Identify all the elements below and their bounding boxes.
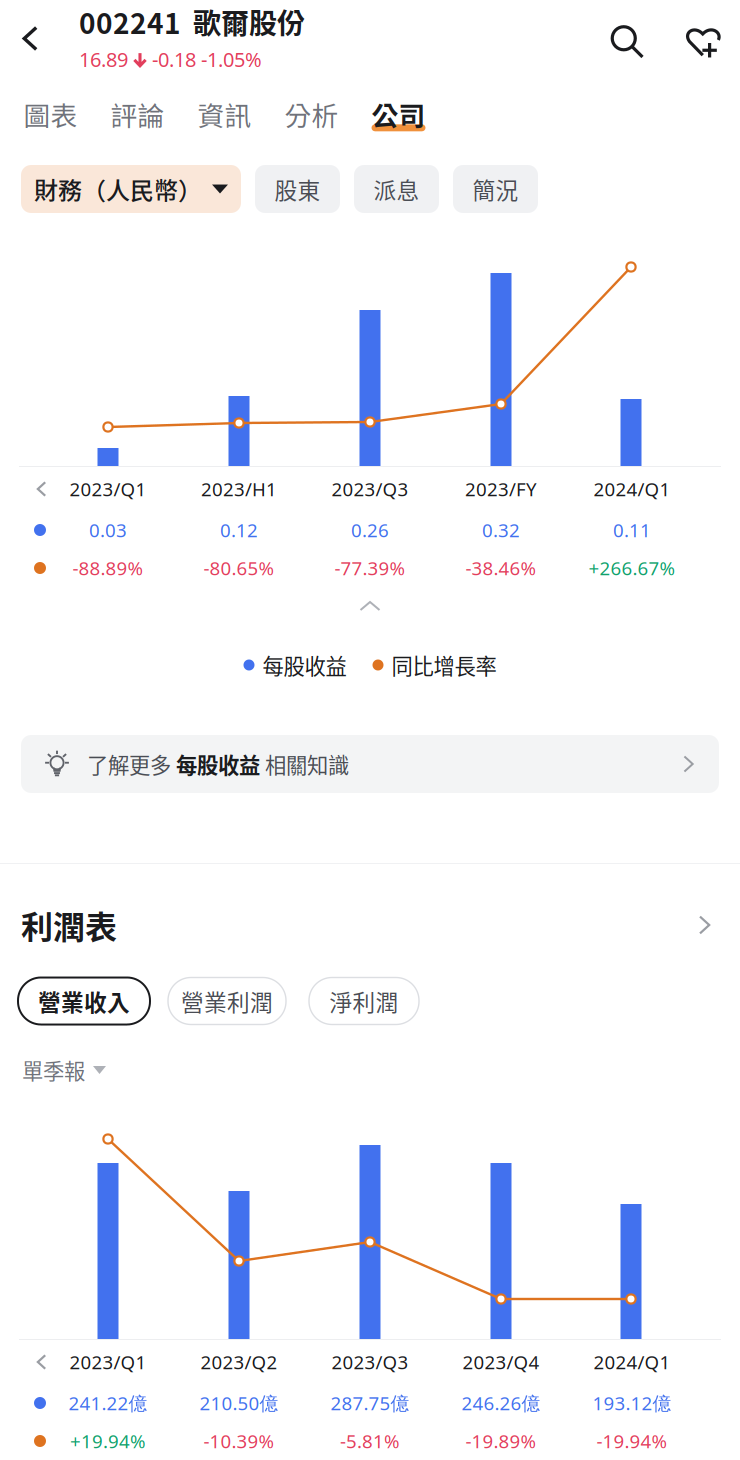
staticText: 淨利潤 bbox=[329, 985, 398, 1017]
button[interactable]: 財務（人民幣） bbox=[21, 165, 241, 213]
button[interactable]: 圖表 bbox=[7, 89, 94, 139]
staticText: 0.12 bbox=[220, 518, 258, 542]
button[interactable]: 公司 bbox=[355, 89, 442, 139]
button[interactable]: 營業收入 bbox=[18, 977, 150, 1024]
button[interactable]: 營業利潤 bbox=[168, 977, 286, 1024]
staticText: 相關知識 bbox=[260, 749, 349, 779]
staticText: 營業收入 bbox=[38, 985, 130, 1017]
button[interactable]: Previous periods bbox=[0, 1340, 40, 1384]
staticText: 2023/Q4 bbox=[462, 1350, 539, 1374]
staticText: -0.18 bbox=[152, 46, 196, 73]
button[interactable]: Open income statement bbox=[682, 894, 726, 956]
button[interactable]: Collapse table bbox=[0, 587, 740, 625]
staticText: 0.11 bbox=[613, 518, 651, 542]
button[interactable]: 股東 bbox=[255, 165, 340, 213]
staticText: 資訊 bbox=[197, 95, 251, 133]
staticText: 246.26億 bbox=[461, 1391, 540, 1415]
staticText: +19.94% bbox=[70, 1429, 146, 1453]
staticText: 圖表 bbox=[23, 95, 77, 133]
staticText: 2023/FY bbox=[465, 477, 537, 501]
staticText: 了解更多 bbox=[87, 749, 176, 779]
staticText: 2023/Q1 bbox=[69, 1350, 146, 1374]
button[interactable]: Back bbox=[0, 1, 62, 75]
staticText: -88.89% bbox=[72, 556, 143, 580]
staticText: 同比增長率 bbox=[391, 650, 496, 680]
button[interactable]: Search bbox=[590, 1, 664, 81]
staticText: 0.03 bbox=[89, 518, 127, 542]
staticText: 2023/Q3 bbox=[331, 477, 408, 501]
button[interactable]: 淨利潤 bbox=[309, 977, 419, 1024]
button[interactable]: 單季報 bbox=[0, 1034, 240, 1096]
button[interactable]: 評論 bbox=[94, 89, 181, 139]
staticText: -77.39% bbox=[334, 556, 405, 580]
staticText: -38.46% bbox=[465, 556, 536, 580]
button[interactable]: 簡況 bbox=[453, 165, 538, 213]
staticText: 0.26 bbox=[351, 518, 389, 542]
staticText: 002241 歌爾股份 bbox=[79, 1, 305, 42]
staticText: -19.94% bbox=[596, 1429, 667, 1453]
staticText: -5.81% bbox=[340, 1429, 400, 1453]
button[interactable]: Add to watchlist bbox=[664, 1, 740, 81]
button[interactable]: 資訊 bbox=[181, 89, 268, 139]
staticText: 利潤表 bbox=[21, 902, 117, 948]
staticText: 241.22億 bbox=[68, 1391, 147, 1415]
staticText: 210.50億 bbox=[199, 1391, 278, 1415]
staticText: 每股收益 bbox=[262, 650, 346, 680]
staticText: 每股收益 bbox=[176, 749, 260, 779]
button[interactable]: 了解更多 bbox=[21, 735, 719, 793]
staticText: +266.67% bbox=[588, 556, 675, 580]
button[interactable]: Previous periods bbox=[0, 467, 40, 511]
staticText: 單季報 bbox=[22, 1055, 85, 1085]
button[interactable]: 派息 bbox=[354, 165, 439, 213]
staticText: 287.75億 bbox=[330, 1391, 409, 1415]
staticText: -80.65% bbox=[203, 556, 274, 580]
staticText: 2024/Q1 bbox=[593, 1350, 670, 1374]
staticText: 16.89 bbox=[79, 46, 128, 73]
staticText: 營業利潤 bbox=[181, 985, 273, 1017]
staticText: 2023/Q3 bbox=[331, 1350, 408, 1374]
staticText: 公司 bbox=[371, 95, 425, 133]
staticText: 2023/Q2 bbox=[200, 1350, 277, 1374]
button[interactable]: 分析 bbox=[268, 89, 355, 139]
staticText: -10.39% bbox=[203, 1429, 274, 1453]
staticText: 2023/Q1 bbox=[69, 477, 146, 501]
staticText: 簡況 bbox=[472, 173, 518, 205]
staticText: 評論 bbox=[110, 95, 164, 133]
staticText: 派息 bbox=[373, 173, 419, 205]
staticText: 股東 bbox=[274, 173, 320, 205]
staticText: 財務（人民幣） bbox=[34, 172, 202, 206]
staticText: 2023/H1 bbox=[201, 477, 277, 501]
staticText: 分析 bbox=[284, 95, 338, 133]
staticText: 0.32 bbox=[482, 518, 520, 542]
staticText: -1.05% bbox=[201, 46, 262, 73]
staticText: 2024/Q1 bbox=[593, 477, 670, 501]
staticText: -19.89% bbox=[465, 1429, 536, 1453]
staticText: 193.12億 bbox=[592, 1391, 671, 1415]
